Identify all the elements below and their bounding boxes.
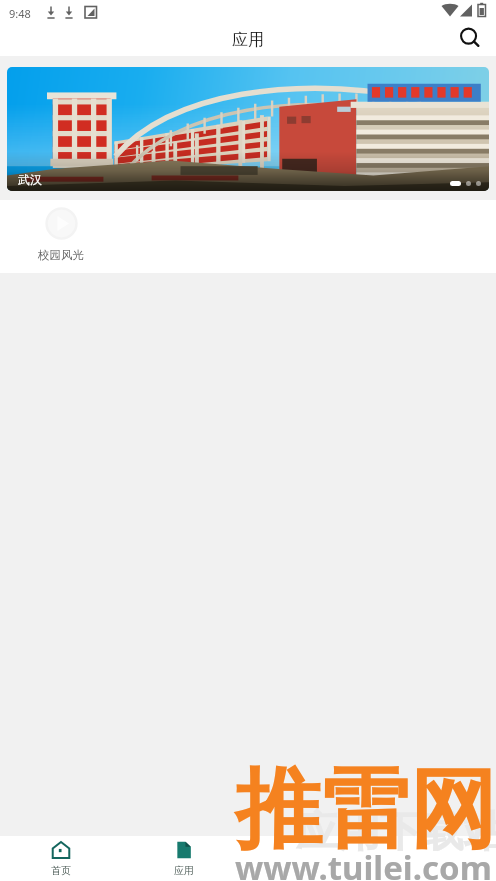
- staticText: 首页: [51, 864, 71, 877]
- staticText: 9:48: [9, 6, 31, 21]
- button[interactable]: Search: [450, 19, 490, 56]
- staticText: 校园风光: [38, 248, 84, 262]
- button[interactable]: 首页: [38, 836, 84, 881]
- staticText: 武汉: [18, 172, 42, 187]
- button[interactable]: 校园风光: [37, 208, 85, 262]
- staticText: 应用下载站: [296, 806, 496, 859]
- staticText: www.tuilei.com: [235, 845, 492, 881]
- staticText: 应用: [174, 864, 194, 877]
- staticText: 应用: [232, 30, 264, 50]
- staticText: 推雷网: [235, 755, 496, 865]
- button[interactable]: 武汉: [7, 67, 489, 191]
- button[interactable]: 应用: [161, 836, 207, 881]
